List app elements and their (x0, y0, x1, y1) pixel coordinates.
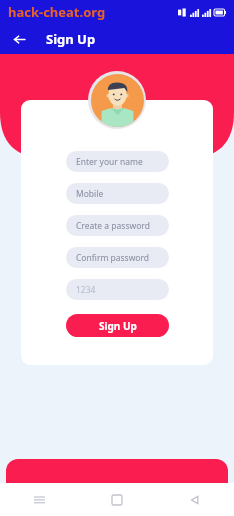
button[interactable]: Sign Up (66, 314, 169, 337)
button[interactable]: 1234 (66, 279, 169, 300)
staticText: hack-cheat.org (8, 3, 106, 21)
button[interactable]: Back (156, 483, 234, 516)
button[interactable]: Enter your name (66, 151, 169, 172)
button[interactable]: Create a password (66, 215, 169, 236)
staticText: Sign Up (46, 30, 96, 48)
button[interactable]: Back (7, 27, 31, 51)
staticText: Create a password (76, 220, 150, 232)
button[interactable]: Mobile (66, 183, 169, 204)
button[interactable]: Home (78, 483, 156, 516)
staticText: Enter your name (76, 156, 143, 168)
button[interactable]: Recent apps (0, 483, 78, 516)
button[interactable]: Confirm password (66, 247, 169, 268)
staticText: Sign Up (99, 319, 137, 333)
staticText: Confirm password (76, 252, 150, 264)
staticText: Mobile (76, 188, 104, 200)
staticText: 1234 (76, 284, 96, 296)
